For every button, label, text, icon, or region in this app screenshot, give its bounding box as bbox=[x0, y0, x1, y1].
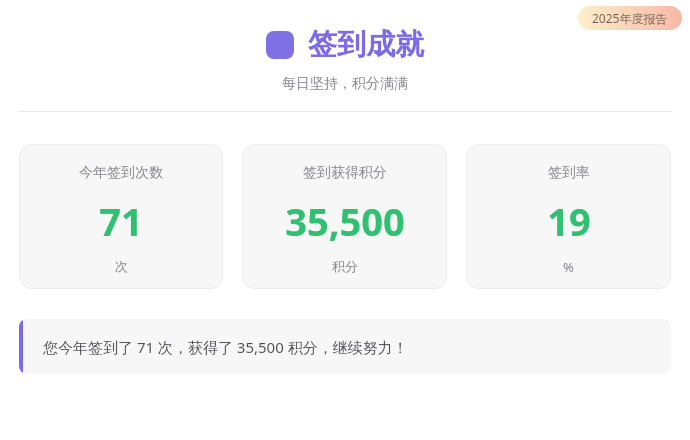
staticText: 您今年签到了 71 次，获得了 35,500 积分，继续努力！ bbox=[43, 337, 408, 357]
staticText: 签到成就 bbox=[308, 26, 424, 63]
button[interactable]: 签到获得积分 bbox=[242, 144, 447, 289]
staticText: 积分 bbox=[332, 258, 358, 274]
button[interactable]: 您今年签到了 71 次，获得了 35,500 积分，继续努力！ bbox=[19, 319, 671, 374]
button[interactable]: 今年签到次数 bbox=[19, 144, 223, 289]
other: Check-in achievement icon bbox=[266, 31, 294, 59]
staticText: 35,500 bbox=[285, 195, 405, 247]
staticText: 签到率 bbox=[548, 164, 590, 182]
button[interactable]: 签到率 bbox=[466, 144, 671, 289]
staticText: 2025年度报告 bbox=[592, 10, 668, 26]
staticText: 签到获得积分 bbox=[303, 164, 387, 182]
staticText: 次 bbox=[115, 258, 128, 274]
staticText: 71 bbox=[99, 195, 143, 247]
staticText: 每日坚持，积分满满 bbox=[0, 75, 690, 93]
button[interactable]: 2025年度报告 bbox=[578, 6, 682, 30]
staticText: 19 bbox=[547, 195, 591, 247]
staticText: 今年签到次数 bbox=[79, 164, 163, 182]
staticText: % bbox=[563, 258, 574, 276]
